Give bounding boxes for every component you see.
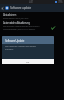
- button[interactable]: Back: [0, 4, 5, 12]
- staticText: Die neuesten Updates werden automatisch: [3, 25, 40, 28]
- staticText: Die neuesten Updates sind bereits: [5, 45, 36, 48]
- button[interactable]: OK: [2, 59, 54, 64]
- staticText: 4:31: [29, 0, 34, 4]
- staticText: Zuletzt gesucht am 6. Juni 16:22: [3, 17, 29, 20]
- staticText: installiert.: [5, 48, 14, 51]
- staticText: 78%: [58, 0, 63, 4]
- staticText: Software update: [10, 6, 32, 10]
- staticText: OK: [26, 60, 30, 63]
- button[interactable]: Automatische Aktualisierung: [3, 21, 64, 31]
- staticText: Automatische Aktualisierung: [3, 21, 30, 25]
- staticText: heruntergeladen, wenn WLAN aktiv ist: [3, 28, 36, 31]
- staticText: Software Update: [5, 39, 25, 43]
- staticText: Aktualisieren: [3, 13, 17, 17]
- button[interactable]: Aktualisieren: [3, 13, 53, 20]
